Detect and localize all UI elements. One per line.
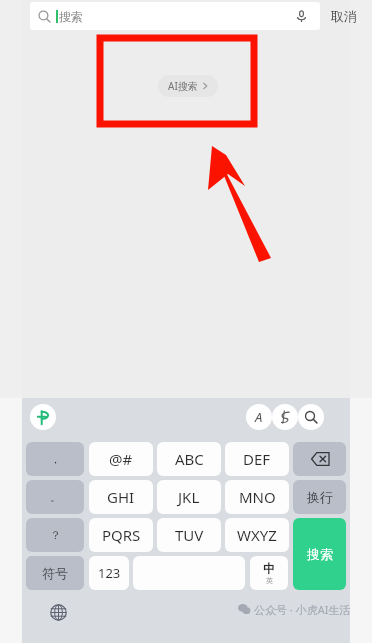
button[interactable]: Handwriting	[272, 404, 298, 430]
staticText: ？	[50, 528, 61, 542]
button[interactable]: 符号	[26, 556, 84, 590]
button[interactable]: 搜索	[30, 2, 320, 30]
staticText: @#	[109, 449, 133, 469]
button[interactable]: ！	[26, 556, 84, 590]
button[interactable]: Switch language	[46, 600, 70, 624]
staticText: PQRS	[102, 525, 141, 545]
button[interactable]: Space	[133, 556, 245, 590]
button[interactable]: 123	[89, 556, 129, 590]
button[interactable]: AI搜索	[158, 75, 218, 97]
button[interactable]: Font	[246, 404, 272, 430]
staticText: WXYZ	[237, 525, 277, 545]
staticText: ！	[50, 566, 61, 580]
button[interactable]: @#	[89, 442, 153, 476]
button[interactable]: Chinese English toggle	[250, 556, 288, 590]
button[interactable]: WXYZ	[225, 518, 289, 552]
staticText: 搜索	[59, 9, 83, 24]
staticText: 取消	[331, 8, 357, 24]
button[interactable]: TUV	[157, 518, 221, 552]
button[interactable]: 。	[26, 480, 84, 514]
staticText: 符号	[42, 565, 68, 581]
staticText: A	[255, 408, 263, 426]
button[interactable]: GHI	[89, 480, 153, 514]
staticText: TUV	[175, 525, 204, 545]
button[interactable]: Backspace	[293, 442, 346, 476]
button[interactable]: JKL	[157, 480, 221, 514]
button[interactable]: DEF	[225, 442, 289, 476]
staticText: 换行	[307, 489, 333, 505]
staticText: 。	[50, 490, 61, 504]
staticText: ，	[50, 452, 61, 466]
staticText: 搜索	[307, 546, 333, 562]
button[interactable]: Voice search	[290, 5, 312, 27]
staticText: DEF	[243, 449, 271, 469]
button[interactable]: 搜索	[293, 518, 346, 590]
button[interactable]: ，	[26, 442, 84, 476]
staticText: MNO	[239, 487, 276, 507]
button[interactable]: ？	[26, 518, 84, 552]
staticText: AI搜索	[168, 79, 198, 93]
staticText: 公众号 · 小虎AI生活	[254, 602, 351, 617]
staticText: 英	[266, 576, 273, 585]
button[interactable]: Search	[298, 404, 324, 430]
staticText: GHI	[107, 487, 135, 507]
button[interactable]: Input method	[30, 404, 56, 430]
staticText: ABC	[175, 449, 204, 469]
button[interactable]: PQRS	[89, 518, 153, 552]
staticText: 123	[98, 564, 121, 582]
button[interactable]: 换行	[293, 480, 346, 514]
staticText: JKL	[178, 487, 200, 507]
staticText: 中	[263, 561, 275, 576]
button[interactable]: 取消	[320, 0, 368, 32]
button[interactable]: MNO	[225, 480, 289, 514]
button[interactable]: ABC	[157, 442, 221, 476]
